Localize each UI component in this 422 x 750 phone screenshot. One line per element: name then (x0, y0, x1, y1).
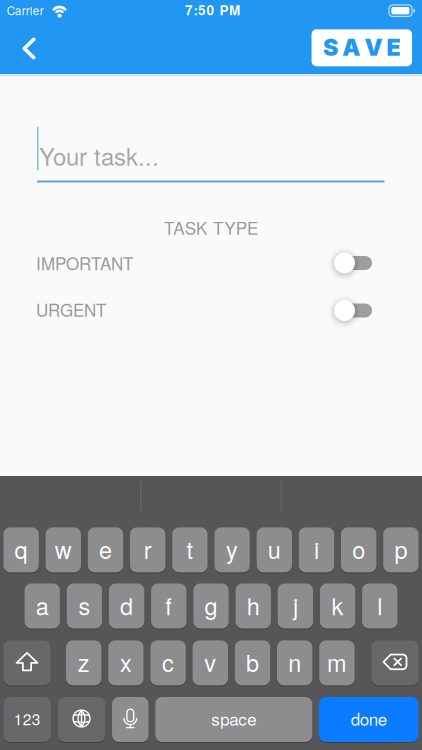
staticText: t (186, 532, 193, 566)
staticText: s (78, 588, 90, 622)
button[interactable]: l (362, 583, 397, 629)
staticText: space (211, 706, 256, 731)
button[interactable]: b (235, 640, 270, 686)
staticText: a (36, 588, 49, 622)
button[interactable]: s (67, 583, 102, 629)
staticText: o (352, 532, 365, 566)
button[interactable]: m (319, 640, 355, 686)
staticText: S (323, 33, 338, 61)
staticText: l (377, 588, 382, 622)
staticText: k (332, 588, 344, 622)
button[interactable] (58, 696, 105, 742)
button[interactable]: p (383, 527, 419, 573)
button[interactable]: j (278, 583, 313, 629)
button[interactable]: d (109, 583, 144, 629)
button[interactable]: h (235, 583, 271, 629)
staticText: r (144, 532, 152, 566)
button[interactable] (334, 298, 372, 322)
button[interactable]: u (257, 527, 292, 573)
staticText: m (327, 645, 347, 679)
staticText: u (268, 532, 281, 566)
staticText: z (78, 645, 90, 679)
button[interactable]: o (341, 527, 376, 573)
button[interactable] (37, 180, 384, 182)
button[interactable]: 123 (3, 696, 51, 742)
staticText: done (351, 706, 387, 731)
staticText: n (288, 645, 301, 679)
button[interactable]: space (155, 696, 312, 742)
staticText: j (293, 588, 298, 622)
staticText: v (204, 645, 216, 679)
staticText: A (342, 33, 360, 61)
button[interactable]: k (320, 583, 355, 629)
staticText: 123 (14, 707, 41, 730)
staticText: b (246, 645, 259, 679)
button[interactable]: v (193, 640, 228, 686)
button[interactable]: w (46, 527, 81, 573)
button[interactable]: c (150, 640, 186, 686)
staticText: h (247, 588, 260, 622)
button[interactable]: y (214, 527, 250, 573)
button[interactable]: q (3, 527, 39, 573)
staticText: q (15, 532, 28, 566)
staticText: d (120, 588, 133, 622)
button[interactable]: f (151, 583, 186, 629)
button[interactable]: z (66, 640, 101, 686)
button[interactable]: t (172, 527, 208, 573)
button[interactable] (3, 640, 51, 686)
button[interactable]: a (24, 583, 60, 629)
button[interactable] (334, 251, 372, 275)
staticText: y (226, 532, 238, 566)
staticText: w (55, 532, 72, 566)
staticText: TASK TYPE (164, 215, 258, 240)
staticText: URGENT (36, 297, 106, 322)
button[interactable]: r (130, 527, 165, 573)
staticText: p (394, 532, 407, 566)
button[interactable] (371, 640, 419, 686)
staticText: e (99, 532, 112, 566)
button[interactable]: g (193, 583, 229, 629)
button[interactable]: i (299, 527, 334, 573)
staticText: i (314, 532, 319, 566)
button[interactable]: n (277, 640, 312, 686)
staticText: IMPORTANT (36, 251, 133, 275)
staticText: g (204, 588, 217, 622)
button[interactable]: e (88, 527, 123, 573)
staticText: Your task... (39, 138, 159, 173)
button[interactable]: done (319, 696, 419, 742)
staticText: V (364, 33, 382, 61)
button[interactable] (112, 696, 149, 742)
staticText: E (387, 33, 401, 61)
staticText: x (120, 645, 132, 679)
button[interactable]: S (312, 29, 412, 66)
button[interactable] (8, 24, 50, 73)
staticText: f (165, 588, 172, 622)
staticText: 7:50 PM (185, 0, 240, 19)
staticText: c (162, 645, 174, 679)
button[interactable]: x (108, 640, 144, 686)
staticText: Carrier (7, 2, 44, 19)
